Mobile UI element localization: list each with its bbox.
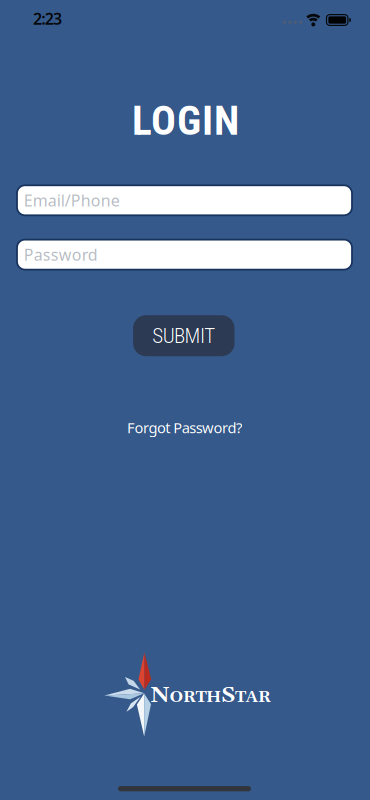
button[interactable]: Password (17, 240, 352, 270)
staticText: LOGIN (132, 96, 239, 145)
button[interactable]: Forgot Password? (127, 418, 242, 437)
button[interactable]: SUBMIT (133, 315, 235, 356)
staticText: N (151, 681, 170, 710)
button[interactable]: Email/Phone (17, 185, 352, 215)
staticText: ORTH (170, 687, 221, 708)
staticText: Email/Phone (24, 190, 120, 211)
staticText: S (221, 681, 235, 710)
staticText: Forgot Password? (127, 418, 242, 437)
staticText: SUBMIT (152, 323, 215, 348)
staticText: 2:23 (33, 8, 62, 29)
staticText: Password (24, 244, 98, 265)
staticText: TAR (235, 687, 271, 708)
